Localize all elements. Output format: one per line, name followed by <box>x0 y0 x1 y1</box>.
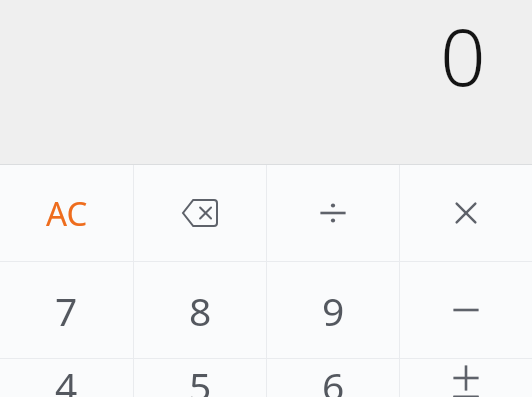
button[interactable]: AC <box>0 165 133 261</box>
button[interactable]: 7 <box>0 262 133 358</box>
button[interactable]: Plus <box>400 359 532 397</box>
button[interactable]: Divide <box>267 165 399 261</box>
button[interactable]: Backspace <box>134 165 266 261</box>
button[interactable]: 6 <box>267 359 399 397</box>
button[interactable]: 4 <box>0 359 133 397</box>
staticText: 8 <box>189 284 212 337</box>
button[interactable]: Minus <box>400 262 532 358</box>
staticText: 6 <box>322 359 345 397</box>
button[interactable]: 8 <box>134 262 266 358</box>
button[interactable]: Multiply <box>400 165 532 261</box>
button[interactable]: 5 <box>134 359 266 397</box>
staticText: 5 <box>189 359 212 397</box>
staticText: 7 <box>55 284 78 337</box>
staticText: 9 <box>322 284 345 337</box>
staticText: AC <box>46 191 88 236</box>
staticText: 4 <box>55 359 78 397</box>
staticText: 0 <box>440 0 486 109</box>
button[interactable]: 9 <box>267 262 399 358</box>
